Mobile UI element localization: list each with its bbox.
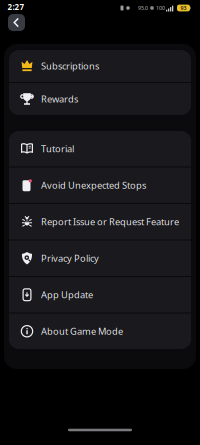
staticText: Tutorial [41, 143, 74, 155]
staticText: 2:27 [7, 2, 24, 12]
button[interactable]: About Game Mode [9, 313, 191, 349]
staticText: Privacy Policy [41, 252, 99, 264]
button[interactable]: App Update [9, 277, 191, 312]
button[interactable]: Subscriptions [9, 50, 191, 82]
staticText: App Update [41, 289, 93, 301]
staticText: Rewards [41, 93, 78, 105]
staticText: Avoid Unexpected Stops [41, 179, 146, 191]
button[interactable]: Avoid Unexpected Stops [9, 167, 191, 203]
button[interactable]: Privacy Policy [9, 240, 191, 276]
staticText: 93 [180, 4, 186, 12]
staticText: 100 [156, 4, 165, 12]
button[interactable]: Report Issue or Request Feature [9, 204, 191, 239]
button[interactable]: Back [8, 14, 25, 31]
button[interactable]: Tutorial [9, 131, 191, 166]
staticText: Report Issue or Request Feature [41, 216, 179, 228]
staticText: Subscriptions [41, 60, 99, 72]
button[interactable]: Rewards [9, 83, 191, 115]
staticText: About Game Mode [41, 325, 123, 337]
staticText: 95.0 [138, 4, 148, 12]
